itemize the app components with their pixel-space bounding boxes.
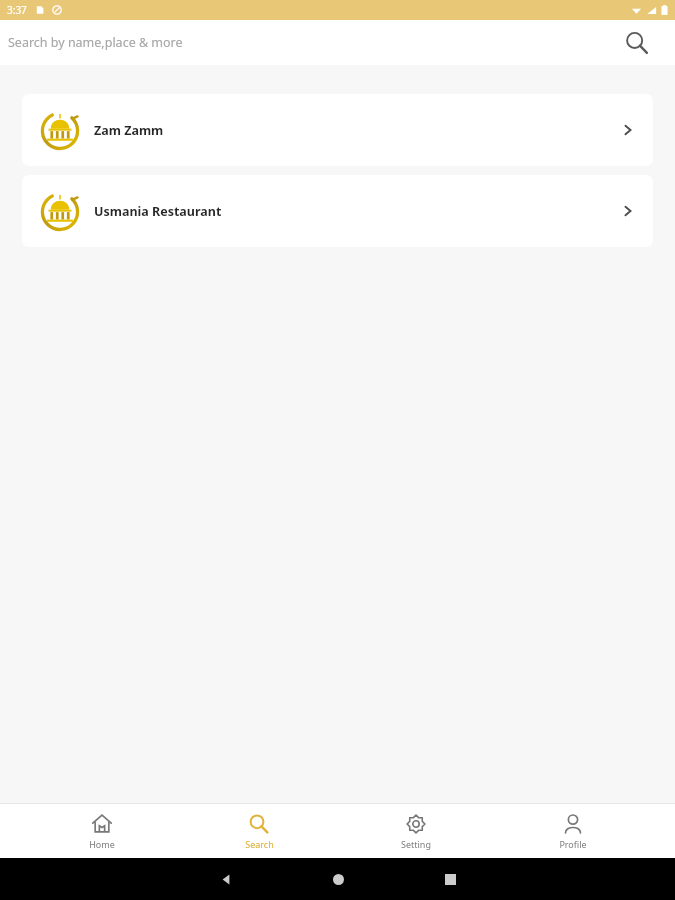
staticText: Setting: [401, 838, 431, 850]
button[interactable]: Zam Zamm: [22, 94, 653, 166]
button[interactable]: Search: [204, 809, 314, 854]
staticText: Home: [89, 838, 115, 850]
button[interactable]: Recent apps: [428, 858, 472, 900]
staticText: Search: [245, 838, 274, 850]
button[interactable]: Profile: [518, 809, 628, 854]
button[interactable]: Search by name,place & more: [0, 20, 675, 65]
staticText: Profile: [559, 838, 587, 850]
button[interactable]: Back: [204, 858, 248, 900]
button[interactable]: Setting: [361, 809, 471, 854]
button[interactable]: Search: [621, 27, 653, 59]
staticText: Search by name,place & more: [8, 34, 183, 51]
button[interactable]: Home: [316, 858, 360, 900]
button[interactable]: Usmania Restaurant: [22, 175, 653, 247]
staticText: Usmania Restaurant: [94, 203, 619, 220]
staticText: Zam Zamm: [94, 122, 619, 139]
button[interactable]: Home: [47, 809, 157, 854]
staticText: 3:37: [7, 3, 27, 17]
